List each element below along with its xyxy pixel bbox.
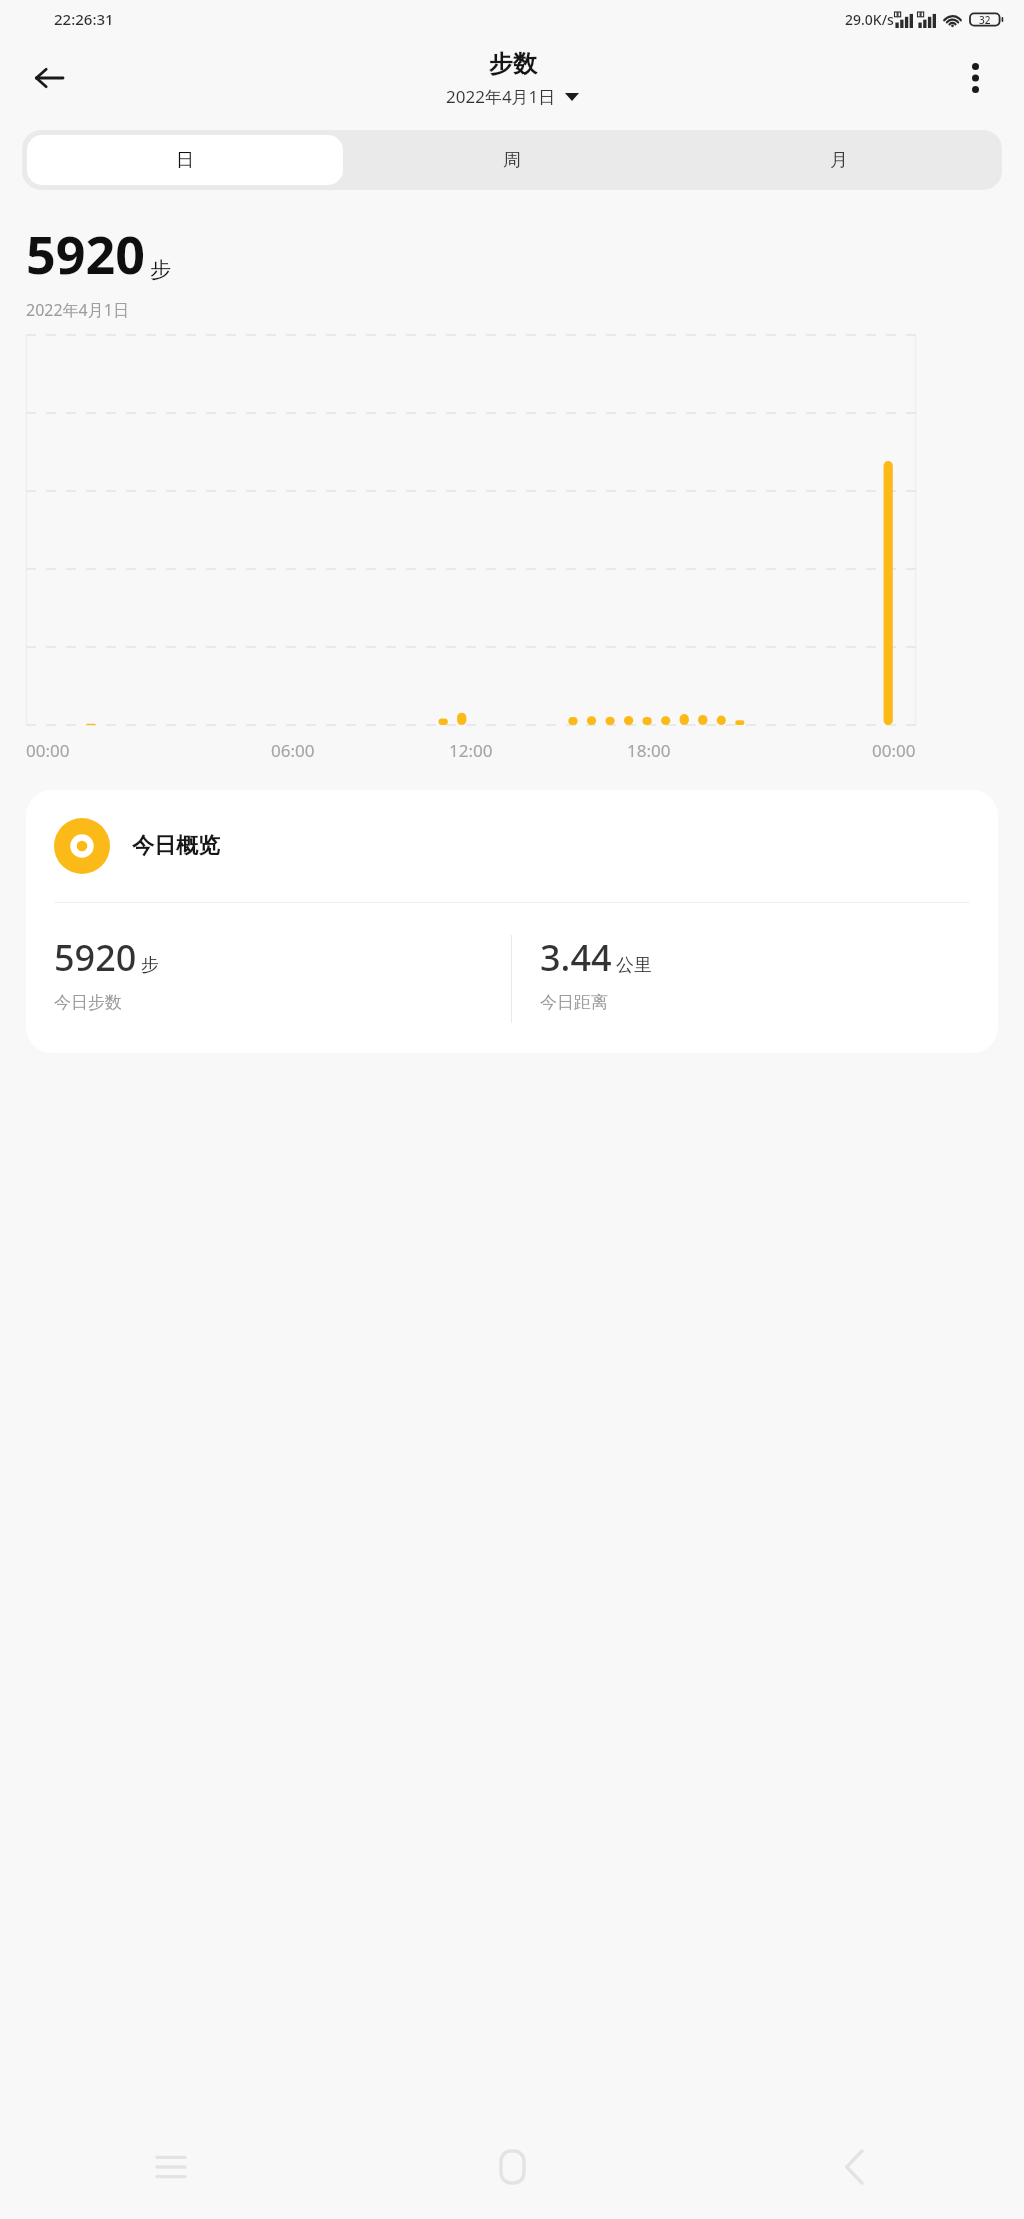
button[interactable]: 日 — [27, 135, 343, 185]
button[interactable]: More options — [946, 49, 1004, 107]
staticText: 3.44 — [540, 933, 612, 982]
staticText: 29.0K/s — [845, 10, 894, 29]
staticText: 06:00 — [271, 739, 315, 762]
staticText: 步数 — [489, 49, 537, 79]
staticText: 今日距离 — [540, 992, 608, 1013]
staticText: 22:26:31 — [54, 9, 114, 29]
staticText: 步 — [150, 257, 171, 283]
staticText: 18:00 — [627, 739, 671, 762]
staticText: 公里 — [616, 954, 652, 977]
staticText: 2022年4月1日 — [446, 85, 556, 108]
staticText: 步 — [141, 954, 159, 977]
staticText: 日 — [176, 149, 194, 172]
staticText: 5920 — [26, 218, 145, 289]
staticText: 5920 — [54, 933, 137, 982]
button[interactable]: 月 — [680, 135, 997, 185]
staticText: 00:00 — [26, 739, 70, 762]
button[interactable]: 周 — [353, 135, 670, 185]
staticText: 周 — [503, 149, 521, 172]
button[interactable]: 2022年4月1日 — [446, 85, 579, 108]
staticText: 月 — [830, 149, 848, 172]
staticText: 12:00 — [449, 739, 493, 762]
staticText: 32 — [979, 13, 991, 27]
staticText: 2022年4月1日 — [26, 299, 129, 321]
staticText: 今日步数 — [54, 992, 122, 1013]
staticText: 今日概览 — [132, 832, 220, 860]
button[interactable]: Back — [20, 49, 78, 107]
staticText: 00:00 — [872, 739, 916, 762]
button[interactable]: 今日概览 — [26, 790, 998, 1053]
